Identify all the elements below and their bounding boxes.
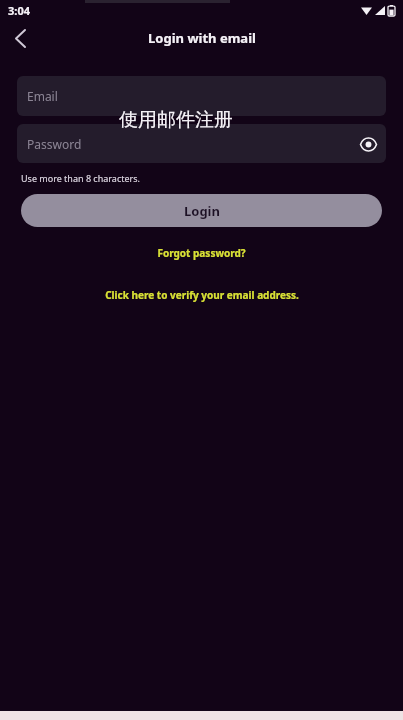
staticText: Click here to verify your email address. bbox=[105, 288, 299, 302]
staticText: Login with email bbox=[148, 29, 256, 47]
staticText: 使用邮件注册 bbox=[119, 108, 233, 132]
staticText: Email bbox=[27, 88, 58, 104]
staticText: Forgot password? bbox=[157, 246, 246, 260]
button[interactable]: Back bbox=[0, 20, 40, 56]
staticText: 3:04 bbox=[8, 3, 30, 18]
button[interactable]: Click here to verify your email address. bbox=[0, 283, 403, 307]
staticText: Password bbox=[27, 136, 82, 152]
button[interactable]: Forgot password? bbox=[0, 240, 403, 266]
button[interactable]: Login bbox=[21, 194, 382, 227]
staticText: Use more than 8 characters. bbox=[21, 172, 140, 184]
staticText: Login bbox=[184, 202, 220, 220]
button[interactable]: Password bbox=[17, 124, 386, 163]
button[interactable]: Email bbox=[17, 76, 386, 116]
button[interactable]: Show password bbox=[350, 126, 386, 162]
